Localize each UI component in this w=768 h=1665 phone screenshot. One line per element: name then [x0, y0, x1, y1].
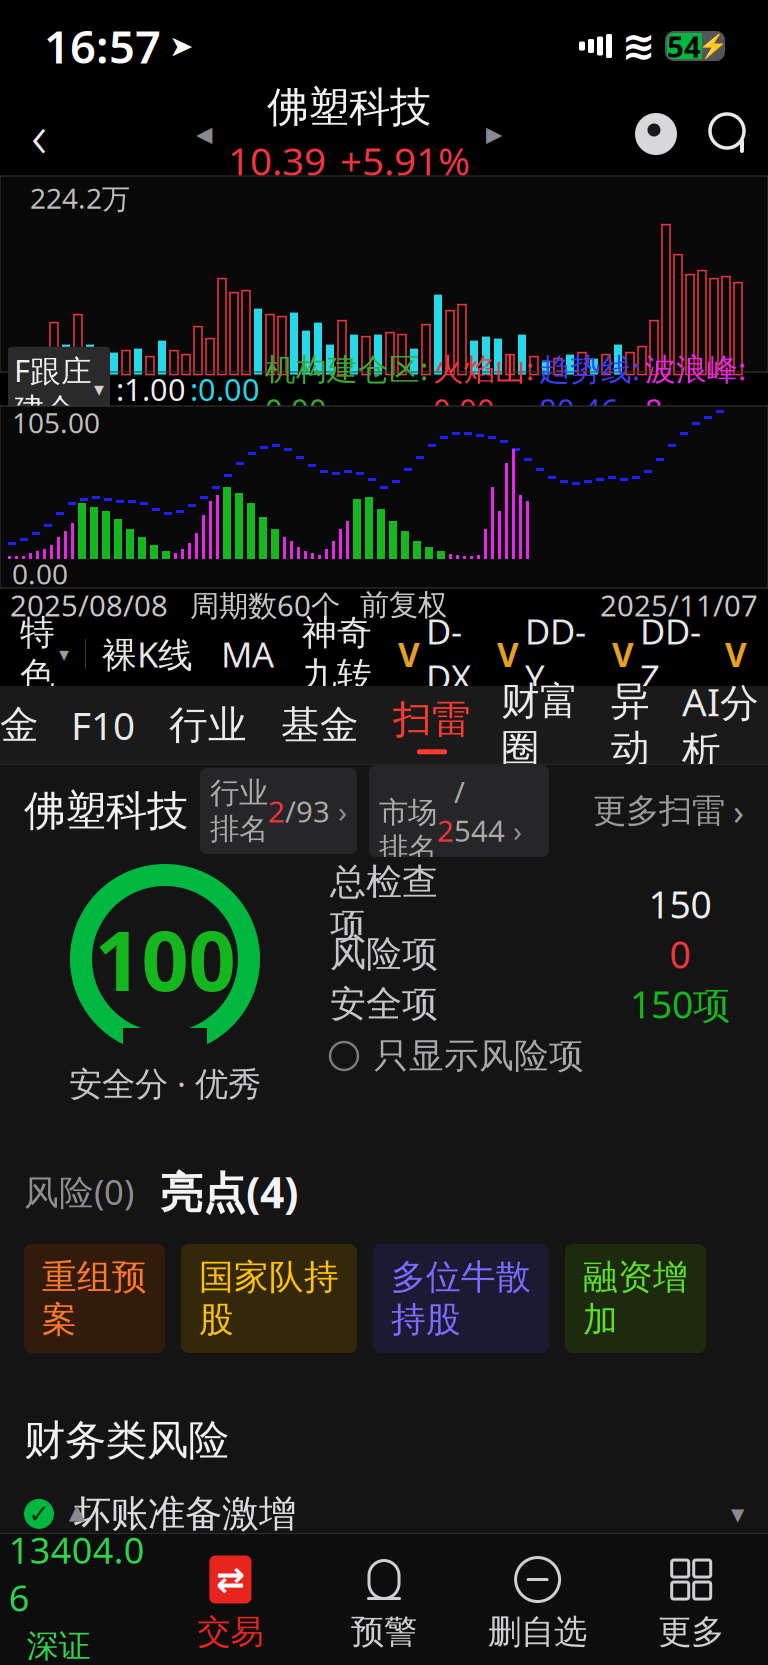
staticText: 财富圈 [501, 677, 579, 772]
staticText: 扫雷 [393, 696, 471, 743]
button[interactable]: ✓ [0, 1608, 768, 1665]
button[interactable]: 扫雷 [359, 686, 471, 764]
staticText: MA [221, 631, 274, 677]
staticText: V [612, 632, 634, 676]
staticText: 重组预案 [42, 1256, 147, 1341]
staticText: ✓ [28, 1561, 49, 1590]
button[interactable]: 异动 [579, 686, 650, 764]
staticText: ▾ [731, 1499, 744, 1529]
staticText: 特色 [20, 611, 55, 697]
button[interactable]: V [372, 622, 471, 686]
button[interactable]: 融资增加 [565, 1244, 706, 1353]
staticText: DDY [525, 608, 586, 700]
button[interactable]: AI分析 [650, 686, 759, 764]
staticText: 10.39 [228, 135, 326, 186]
button[interactable]: V [586, 622, 701, 686]
button[interactable]: 神奇九转 [274, 622, 372, 686]
staticText: AI分析 [682, 675, 759, 774]
button[interactable]: 裸K线 [102, 622, 193, 686]
staticText: ✓ [28, 1623, 49, 1652]
staticText: 行业 [169, 701, 247, 749]
staticText: 风险项 [330, 932, 438, 976]
staticText: 裸K线 [102, 631, 193, 677]
staticText: 预警 [351, 1611, 417, 1652]
staticText: 13404.06 [9, 1526, 145, 1621]
staticText: 市场排名 [379, 794, 437, 866]
button[interactable]: ▲ [0, 1500, 154, 1665]
button[interactable]: 预警 [307, 1555, 461, 1652]
staticText: V [398, 632, 420, 676]
staticText: 坏账准备激增 [74, 1491, 296, 1537]
button[interactable]: 只显示风险项 [330, 1029, 740, 1083]
staticText: 风险(0) [24, 1169, 134, 1215]
staticText: 财务类风险 [24, 1415, 229, 1466]
button[interactable]: 风险(0) [24, 1169, 134, 1215]
staticText: 150 [648, 879, 711, 929]
staticText: 更多 [658, 1611, 724, 1652]
staticText: ◀ [196, 122, 212, 146]
button[interactable]: ✓ [0, 1546, 768, 1606]
staticText: 趋势线:80.46 [539, 348, 640, 430]
button[interactable]: 行业 [135, 686, 247, 764]
staticText: 224.2万 [30, 179, 130, 217]
button[interactable]: 多位牛散持股 [373, 1244, 549, 1353]
staticText: 54 [667, 26, 701, 65]
button[interactable]: 市场排名 [369, 765, 549, 857]
staticText: 佛塑科技 [24, 786, 188, 836]
staticText: /5449 [454, 772, 505, 889]
button[interactable]: 行业排名 [200, 768, 357, 854]
button[interactable]: Back [0, 92, 78, 176]
staticText: ▾ [59, 643, 69, 665]
staticText: 更多扫雷 [593, 790, 725, 831]
staticText: 波浪峰:8 [645, 348, 746, 430]
staticText: 安全分 · 优秀 [69, 1061, 261, 1105]
button[interactable]: 金 [0, 686, 39, 764]
staticText: 异动 [611, 677, 650, 772]
button[interactable]: 基金 [247, 686, 359, 764]
button[interactable]: V [471, 622, 586, 686]
staticText: DDZ [640, 608, 701, 700]
button[interactable]: Previous stock [184, 99, 224, 169]
staticText: V [725, 632, 747, 676]
staticText: 前复权 [360, 587, 447, 623]
button[interactable]: 财富圈 [471, 686, 579, 764]
button[interactable]: 更多 [614, 1555, 768, 1652]
staticText: 16:57 [44, 16, 161, 76]
button[interactable]: Next stock [474, 99, 514, 169]
button[interactable]: F10 [39, 686, 135, 764]
button[interactable]: 更多扫雷 [593, 787, 744, 835]
staticText: 删自选 [488, 1611, 587, 1652]
staticText: ➤ [169, 29, 194, 63]
button[interactable]: ✓ [0, 1484, 768, 1544]
staticText: 国家队持股 [199, 1256, 339, 1341]
button[interactable]: 重组预案 [24, 1244, 165, 1353]
button[interactable]: ⇄ [154, 1555, 307, 1652]
button[interactable]: 删自选 [461, 1555, 614, 1652]
staticText: 佛塑科技 [267, 82, 431, 133]
staticText: ⚡ [698, 32, 728, 60]
staticText: 0.00 [12, 555, 68, 592]
staticText: › [330, 791, 347, 830]
button[interactable]: 特色 [0, 622, 69, 686]
staticText: 深证 -0.36% [27, 1623, 127, 1665]
staticText: F10 [71, 699, 135, 751]
staticText: 100 [94, 904, 235, 1014]
staticText: › [505, 811, 522, 850]
button[interactable]: 国家队持股 [181, 1244, 357, 1353]
staticText: ▶ [486, 122, 502, 146]
button[interactable]: MA [193, 622, 274, 686]
staticText: 神奇九转 [302, 611, 372, 697]
staticText: 只显示风险项 [374, 1035, 584, 1077]
staticText: DDX [426, 608, 471, 700]
button[interactable]: 亮点(4) [160, 1163, 298, 1220]
staticText: :1.00 [116, 369, 186, 409]
staticText: 交易 [197, 1611, 263, 1652]
staticText: ⇄ [216, 1560, 245, 1599]
staticText: 周期数60个 [190, 585, 340, 624]
staticText: › [733, 787, 744, 835]
staticText: 2025/11/07 [600, 585, 758, 624]
staticText: F跟庄建仓 [14, 350, 92, 428]
button[interactable]: F跟庄建仓 [8, 347, 110, 431]
button[interactable]: Search [692, 92, 768, 176]
button[interactable]: Assistant [620, 92, 692, 176]
